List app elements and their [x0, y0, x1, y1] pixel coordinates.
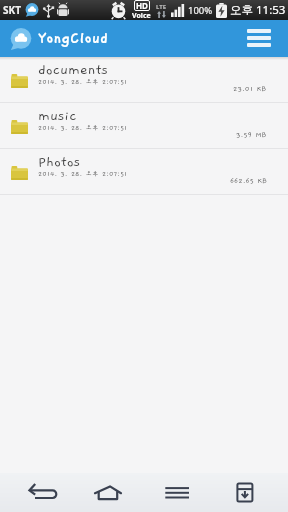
button[interactable] [161, 477, 193, 503]
staticText: documents [38, 61, 108, 77]
staticText: 100% [188, 4, 213, 17]
staticText: 2014. 3. 28. 오후 2:07:51 [38, 124, 128, 132]
staticText: Photos [38, 153, 81, 169]
button[interactable] [247, 29, 288, 47]
staticText: 2014. 3. 28. 오후 2:07:51 [38, 78, 128, 86]
staticText: 오후 11:53 [230, 2, 286, 18]
staticText: HD [136, 0, 148, 11]
button[interactable]: documents [0, 57, 288, 102]
staticText: YongCloud [38, 30, 109, 47]
staticText: Voice [132, 11, 151, 20]
button[interactable]: Photos [0, 149, 288, 194]
button[interactable] [27, 477, 59, 503]
button[interactable] [91, 477, 123, 503]
staticText: 662.65 KB [230, 177, 267, 186]
staticText: LTE [156, 3, 167, 11]
button[interactable] [229, 477, 261, 503]
staticText: 2014. 3. 28. 오후 2:07:51 [38, 170, 128, 178]
staticText: music [38, 107, 77, 123]
staticText: 3.59 MB [236, 131, 267, 140]
button[interactable]: music [0, 103, 288, 148]
staticText: SKT [3, 3, 21, 17]
staticText: 23.01 KB [233, 85, 267, 94]
